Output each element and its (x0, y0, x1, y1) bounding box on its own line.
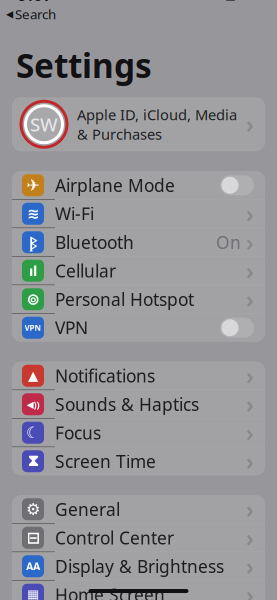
staticText: VPN (24, 322, 41, 333)
staticText: ◀)) (26, 398, 39, 410)
staticText: ▲ (28, 368, 38, 383)
button[interactable]: ıl (12, 257, 265, 285)
button[interactable]: SW (12, 97, 265, 151)
staticText: ıl (29, 261, 37, 280)
staticText: Screen Time (55, 450, 156, 473)
staticText: Cellular (55, 259, 116, 282)
button[interactable]: ⧗ (12, 447, 265, 475)
staticText: Airplane Mode (55, 174, 175, 197)
button[interactable]: Back to Search (0, 5, 56, 23)
staticText: ⚙ (26, 500, 40, 518)
staticText: ▦ (26, 587, 39, 600)
button[interactable]: ≋ (12, 200, 265, 228)
button[interactable]: VPN (12, 314, 265, 342)
staticText: › (246, 446, 254, 476)
staticText: ☾ (26, 424, 40, 442)
staticText: General (55, 498, 120, 521)
button[interactable]: ☾ (12, 419, 265, 447)
staticText: › (246, 256, 254, 286)
staticText: ◀ (6, 9, 13, 19)
staticText: › (246, 494, 254, 524)
staticText: Display & Brightness (55, 555, 224, 578)
staticText: › (246, 227, 254, 257)
staticText: ⊚ (26, 290, 39, 308)
staticText: › (246, 580, 254, 600)
staticText: Search (15, 5, 56, 23)
staticText: ⧗ (27, 453, 38, 469)
staticText: Apple ID, iCloud, Media & Purchases (77, 105, 237, 144)
staticText: 9:07 (18, 0, 53, 6)
staticText: › (246, 389, 254, 419)
staticText: › (246, 523, 254, 553)
staticText: Sounds & Haptics (55, 393, 199, 416)
staticText: Control Center (55, 526, 174, 549)
staticText: › (246, 551, 254, 581)
staticText: Focus (55, 421, 101, 444)
staticText: Home Screen (55, 583, 165, 600)
staticText: › (246, 199, 254, 229)
staticText: ✈ (26, 176, 39, 194)
staticText: › (246, 284, 254, 314)
staticText: ᛒ (29, 232, 37, 252)
button[interactable]: ✈ (12, 171, 265, 199)
button[interactable]: ▲ (12, 362, 265, 390)
button[interactable]: ◀)) (12, 390, 265, 418)
staticText: Settings (16, 43, 152, 87)
button[interactable]: ⊚ (12, 285, 265, 313)
staticText: VPN (55, 316, 88, 339)
button[interactable]: ⚙ (12, 495, 265, 523)
button[interactable]: ⊟ (12, 524, 265, 552)
staticText: On (216, 231, 241, 254)
staticText: › (246, 418, 254, 448)
staticText: Wi-Fi (55, 202, 94, 225)
button[interactable]: ᛒ (12, 228, 265, 256)
staticText: ⊟ (26, 529, 39, 547)
staticText: › (246, 109, 254, 139)
staticText: ≋ (27, 205, 39, 222)
staticText: SW (30, 112, 58, 137)
staticText: Notifications (55, 364, 155, 387)
staticText: Bluetooth (55, 231, 134, 254)
staticText: Personal Hotspot (55, 288, 194, 311)
staticText: › (246, 361, 254, 391)
button[interactable]: AA (12, 552, 265, 580)
staticText: AA (26, 559, 40, 573)
button[interactable]: ▦ (12, 581, 265, 600)
